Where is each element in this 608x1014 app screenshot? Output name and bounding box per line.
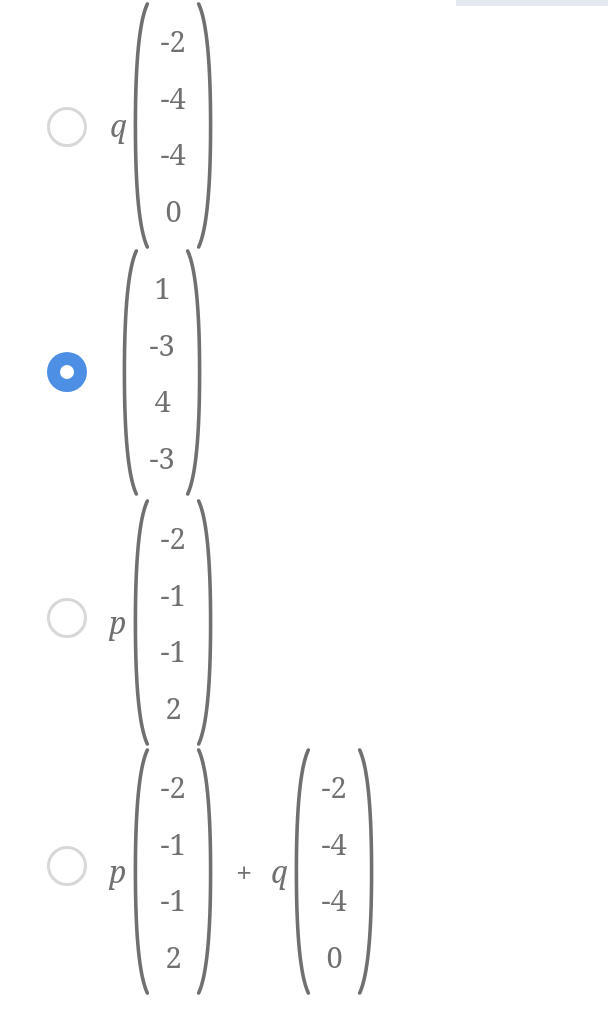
staticText: 4 [154,381,171,420]
button[interactable]: Option q times vector -2 -4 -4 0 [0,0,608,248]
staticText: -3 [149,438,175,477]
staticText: 1 [154,268,171,307]
staticText: -2 [160,767,186,806]
staticText: -1 [160,631,186,670]
staticText: -2 [160,21,186,60]
staticText: q [110,105,127,146]
staticText: -4 [321,824,347,863]
staticText: -1 [160,880,186,919]
staticText: -4 [160,134,186,173]
staticText: -2 [321,767,347,806]
staticText: -2 [160,518,186,557]
staticText: -4 [160,78,186,117]
staticText: p [109,602,127,643]
staticText: 0 [326,937,343,976]
staticText: -4 [321,880,347,919]
staticText: -1 [160,824,186,863]
staticText: + [236,852,253,891]
staticText: 0 [165,191,182,230]
staticText: q [271,851,288,892]
button[interactable]: Option p vector plus q vector [0,748,608,998]
button[interactable]: Option vector 1 -3 4 -3 [0,248,608,498]
staticText: -1 [160,575,186,614]
staticText: 2 [165,688,182,727]
staticText: 2 [165,937,182,976]
staticText: p [109,851,127,892]
staticText: -3 [149,325,175,364]
button[interactable]: Option p times vector -2 -1 -1 2 [0,498,608,748]
